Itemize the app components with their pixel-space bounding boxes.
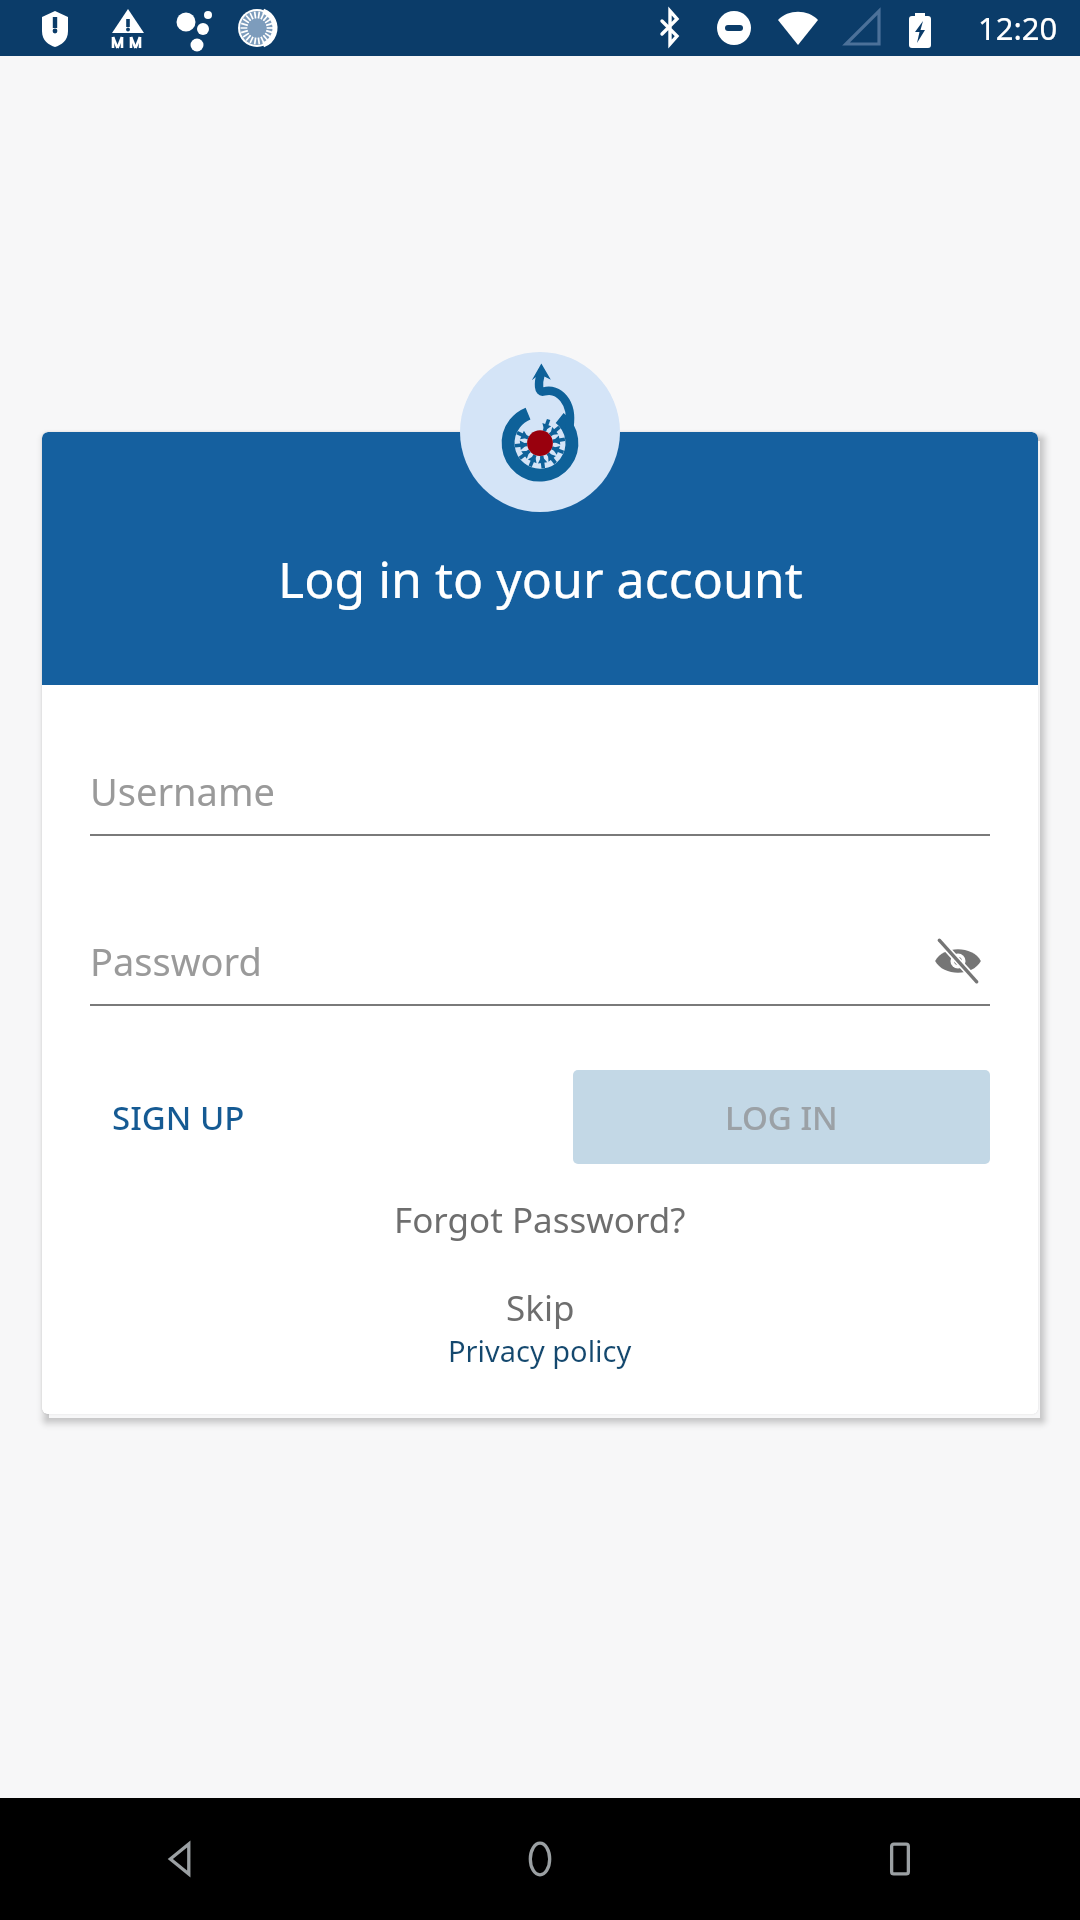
button[interactable]: Forgot Password? [378, 1186, 702, 1254]
button[interactable]: Home [360, 1798, 720, 1920]
staticText: Skip [506, 1284, 575, 1332]
staticText: LOG IN [725, 1095, 838, 1140]
staticText: Log in to your account [278, 545, 803, 613]
button[interactable]: Recent apps [720, 1798, 1080, 1920]
staticText: Privacy policy [448, 1331, 632, 1370]
staticText: Forgot Password? [394, 1196, 686, 1244]
button[interactable]: Privacy policy [436, 1325, 644, 1376]
staticText: SIGN UP [112, 1095, 245, 1140]
staticText: Password [90, 935, 262, 987]
button[interactable]: SIGN UP [90, 1075, 267, 1160]
button[interactable]: Username [90, 760, 990, 836]
button[interactable]: LOG IN [573, 1070, 990, 1164]
button[interactable]: Password [90, 930, 990, 1006]
button[interactable]: Back [0, 1798, 360, 1920]
staticText: 12:20 [978, 7, 1058, 49]
button[interactable]: Show password [926, 930, 990, 992]
button[interactable]: Skip [490, 1274, 591, 1342]
staticText: Username [90, 765, 275, 817]
